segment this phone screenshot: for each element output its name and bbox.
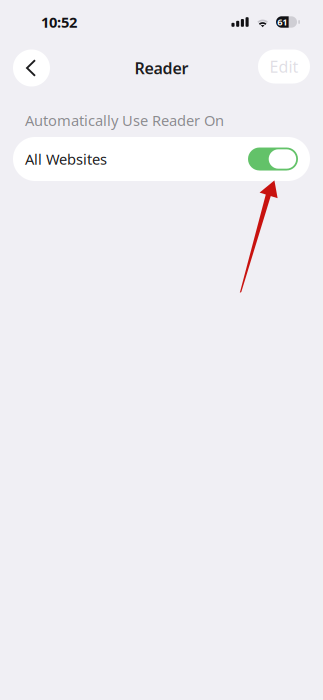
button[interactable]: All Websites	[13, 137, 310, 181]
staticText: All Websites	[25, 149, 107, 169]
button[interactable]: Edit	[258, 51, 310, 85]
staticText: Reader	[134, 57, 188, 79]
staticText: Edit	[269, 56, 298, 77]
staticText: 10:52	[41, 12, 77, 32]
staticText: 61	[277, 16, 287, 28]
staticText: Automatically Use Reader On	[25, 110, 224, 130]
button[interactable]: Back	[13, 49, 50, 86]
